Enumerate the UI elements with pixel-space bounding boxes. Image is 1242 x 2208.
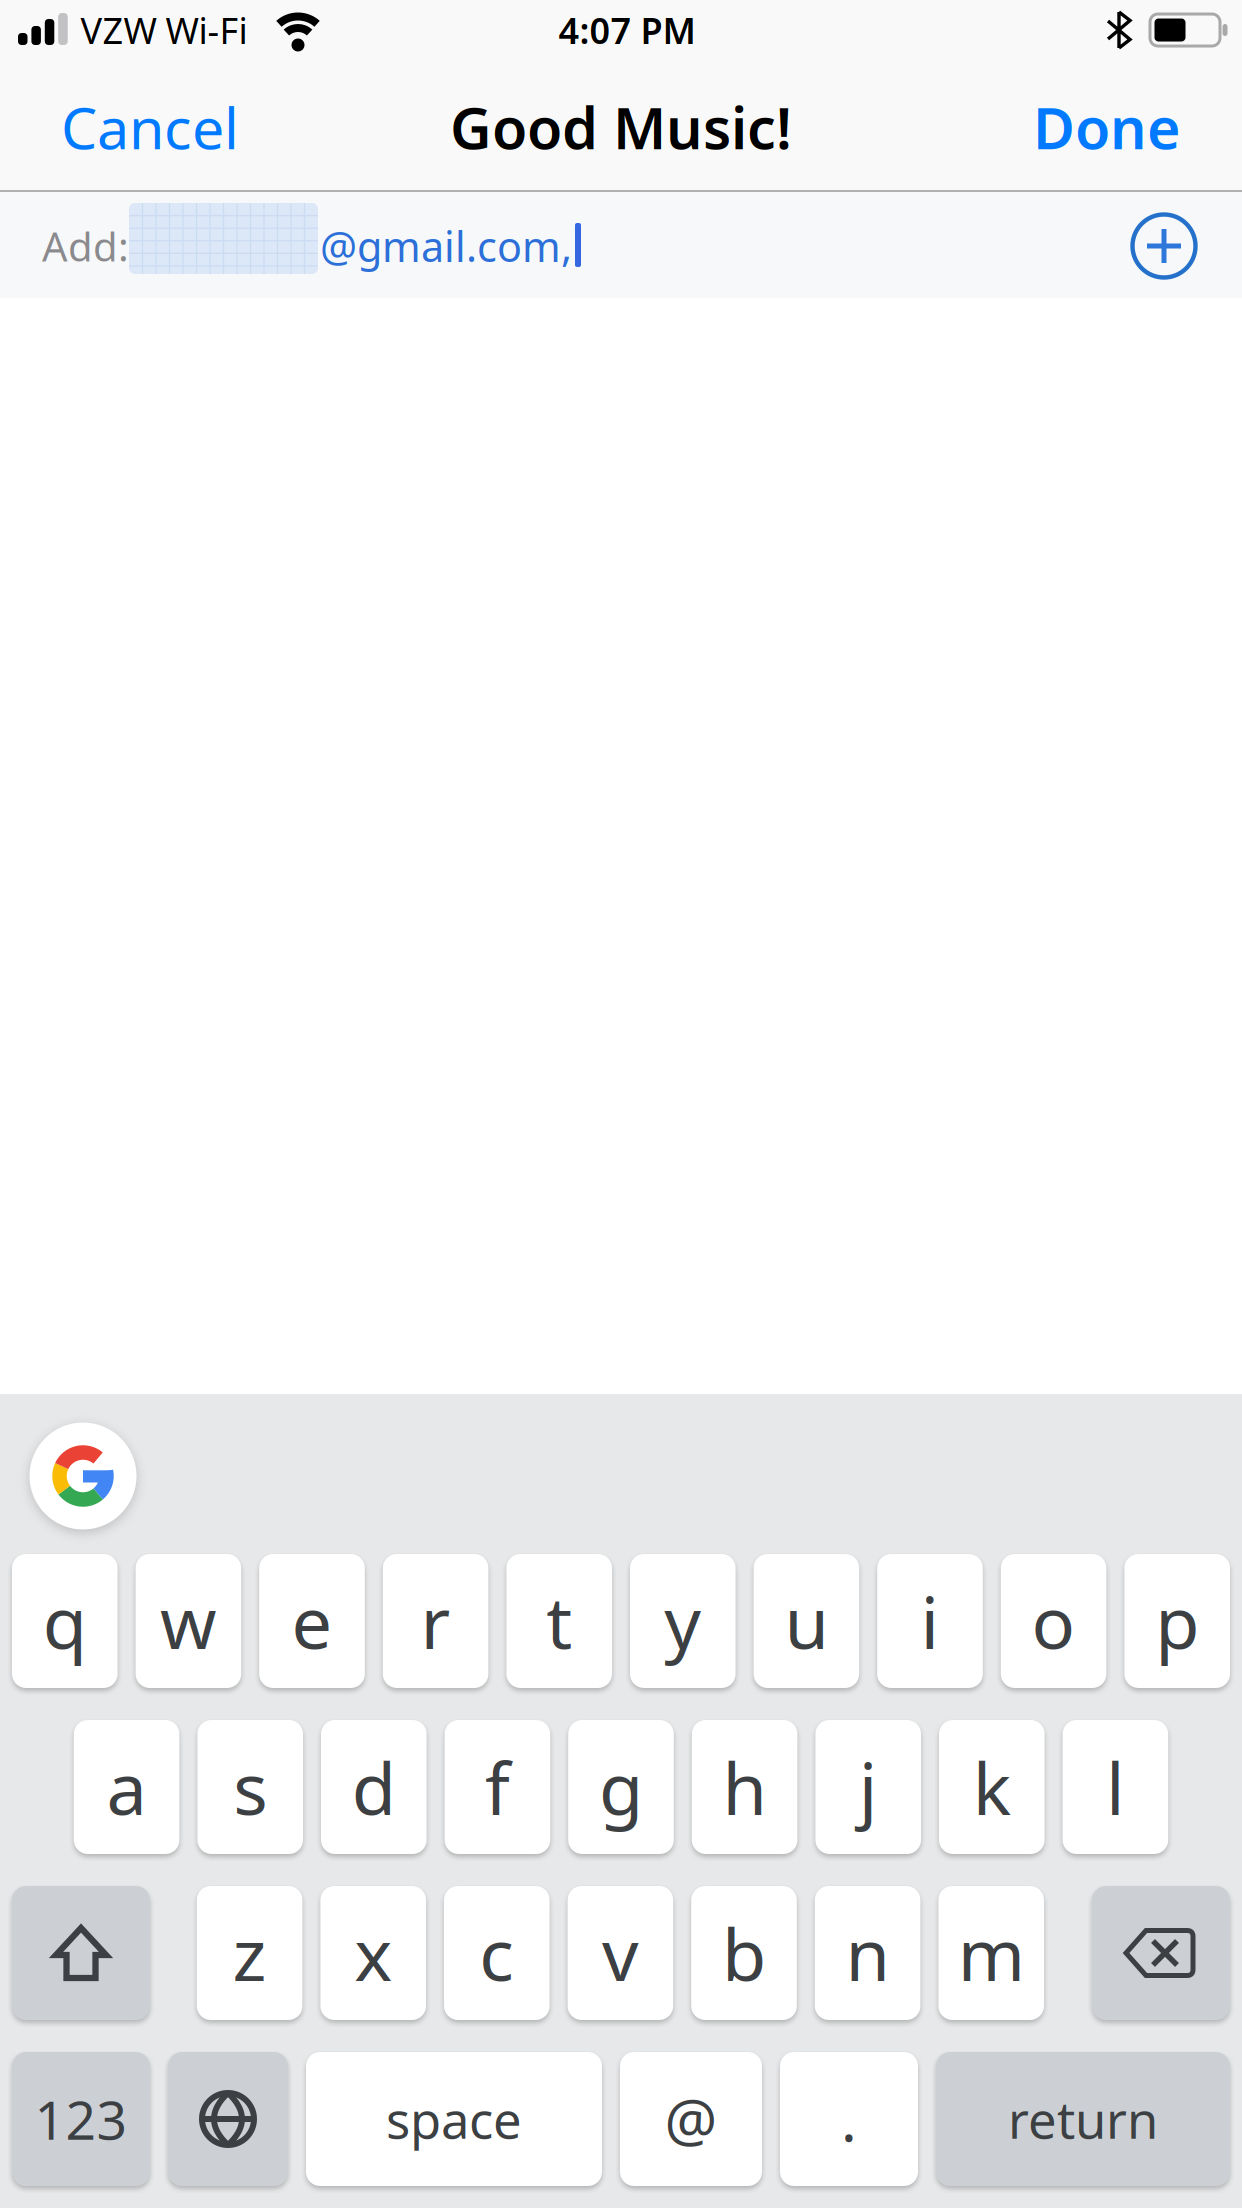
button[interactable]: @ xyxy=(620,2052,762,2186)
staticText: @ xyxy=(664,2080,717,2158)
staticText: . xyxy=(841,2080,857,2158)
button[interactable]: d xyxy=(321,1720,427,1854)
staticText: return xyxy=(1008,2085,1158,2153)
staticText: VZW Wi-Fi xyxy=(80,6,247,54)
button[interactable]: Done xyxy=(861,87,1181,167)
staticText: r xyxy=(421,1573,451,1669)
button[interactable]: f xyxy=(445,1720,550,1854)
button[interactable]: Delete xyxy=(1092,1886,1230,2020)
button[interactable]: . xyxy=(780,2052,918,2186)
button[interactable]: p xyxy=(1124,1554,1230,1688)
staticText: b xyxy=(722,1905,766,2001)
staticText: d xyxy=(352,1739,396,1835)
button[interactable]: o xyxy=(1001,1554,1106,1688)
button[interactable]: b xyxy=(691,1886,797,2020)
button[interactable]: r xyxy=(383,1554,488,1688)
button[interactable]: space xyxy=(306,2052,602,2186)
staticText: g xyxy=(599,1739,643,1835)
button[interactable]: 123 xyxy=(12,2052,150,2186)
button[interactable]: x xyxy=(320,1886,426,2020)
button[interactable]: t xyxy=(506,1554,612,1688)
staticText: s xyxy=(233,1739,267,1835)
button[interactable]: l xyxy=(1063,1720,1168,1854)
staticText: o xyxy=(1032,1573,1076,1669)
staticText: v xyxy=(602,1905,639,2001)
button[interactable]: Shift xyxy=(12,1886,150,2020)
staticText: Cancel xyxy=(61,89,239,165)
staticText: @gmail.com, xyxy=(320,219,572,273)
staticText: Good Music! xyxy=(450,89,792,165)
button[interactable]: Next Keyboard xyxy=(168,2052,288,2186)
staticText: y xyxy=(664,1573,701,1669)
staticText: space xyxy=(386,2085,522,2153)
button[interactable]: Add Recipient xyxy=(1130,212,1198,280)
button[interactable]: q xyxy=(12,1554,118,1688)
staticText: m xyxy=(958,1905,1025,2001)
staticText: t xyxy=(546,1573,572,1669)
button[interactable]: y xyxy=(630,1554,736,1688)
staticText: e xyxy=(291,1573,332,1669)
button[interactable]: j xyxy=(815,1720,921,1854)
button[interactable]: c xyxy=(444,1886,550,2020)
button[interactable]: n xyxy=(815,1886,920,2020)
staticText: w xyxy=(160,1573,217,1669)
staticText: l xyxy=(1106,1739,1125,1835)
staticText: a xyxy=(107,1739,147,1835)
button[interactable]: Google Search xyxy=(28,1421,138,1531)
staticText: z xyxy=(233,1905,267,2001)
button[interactable]: h xyxy=(692,1720,797,1854)
staticText: n xyxy=(846,1905,890,2001)
button[interactable]: Cancel xyxy=(61,87,381,167)
staticText: u xyxy=(784,1573,828,1669)
button[interactable]: i xyxy=(877,1554,983,1688)
button[interactable]: s xyxy=(197,1720,303,1854)
button[interactable]: z xyxy=(197,1886,302,2020)
button[interactable]: e xyxy=(259,1554,365,1688)
staticText: k xyxy=(973,1739,1011,1835)
staticText: Add: xyxy=(42,219,129,272)
staticText: f xyxy=(485,1739,510,1835)
button[interactable]: m xyxy=(938,1886,1044,2020)
staticText: Done xyxy=(1033,89,1181,165)
staticText: 4:07 PM xyxy=(558,6,695,54)
staticText: i xyxy=(920,1573,939,1669)
staticText: p xyxy=(1155,1573,1199,1669)
button[interactable]: return xyxy=(936,2052,1230,2186)
staticText: j xyxy=(859,1739,878,1835)
button[interactable]: g xyxy=(568,1720,674,1854)
button[interactable]: k xyxy=(939,1720,1045,1854)
staticText: c xyxy=(479,1905,514,2001)
button[interactable]: v xyxy=(568,1886,673,2020)
button[interactable]: w xyxy=(136,1554,241,1688)
button[interactable]: a xyxy=(74,1720,179,1854)
staticText: h xyxy=(723,1739,767,1835)
staticText: q xyxy=(43,1573,87,1669)
staticText: x xyxy=(354,1905,392,2001)
button[interactable]: u xyxy=(754,1554,859,1688)
staticText: 123 xyxy=(34,2084,127,2154)
